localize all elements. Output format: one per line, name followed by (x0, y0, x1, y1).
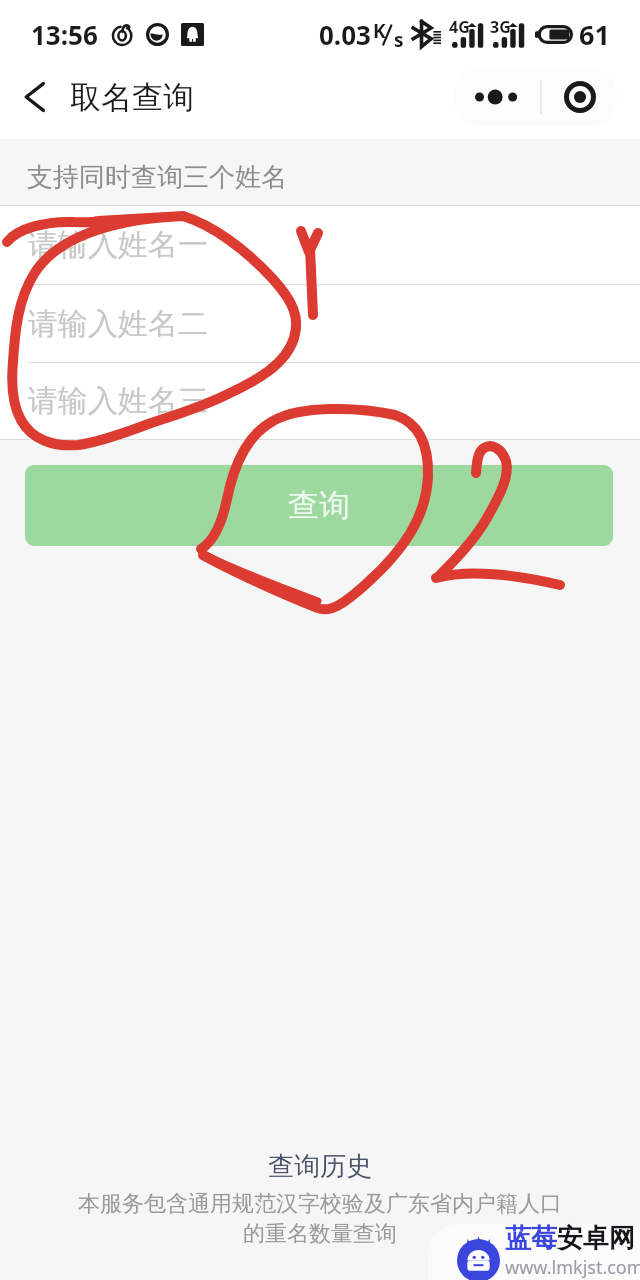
staticText: 请输入姓名二 (28, 305, 208, 343)
staticText: 61 (579, 16, 610, 53)
staticText: 3G (490, 16, 511, 38)
button[interactable]: 查询 (25, 465, 613, 546)
staticText: 支持同时查询三个姓名 (27, 161, 287, 194)
staticText: K (373, 18, 386, 44)
staticText: s (394, 27, 404, 53)
staticText: 本服务包含通用规范汉字校验及广东省内户籍人口 的重名数量查询 (78, 1190, 562, 1248)
button[interactable]: Back (0, 61, 70, 132)
button[interactable]: Close mini program (542, 68, 617, 126)
staticText: 安卓网 (557, 1222, 635, 1255)
staticText: www.lmkjst.com (505, 1255, 640, 1278)
button[interactable]: 请输入姓名三 (0, 363, 640, 439)
staticText: 查询 (288, 486, 350, 525)
staticText: 查询历史 (268, 1150, 372, 1183)
button[interactable]: More (453, 68, 540, 126)
staticText: 4G (449, 16, 470, 38)
staticText: 0.03 (319, 17, 371, 52)
staticText: 取名查询 (70, 78, 194, 117)
staticText: 13:56 (31, 17, 98, 52)
button[interactable]: 查询历史 (252, 1145, 388, 1184)
staticText: 请输入姓名一 (28, 226, 208, 264)
staticText: 请输入姓名三 (28, 382, 208, 420)
button[interactable]: 请输入姓名一 (0, 206, 640, 284)
button[interactable]: 请输入姓名二 (0, 285, 640, 362)
staticText: 蓝莓 (505, 1222, 557, 1255)
